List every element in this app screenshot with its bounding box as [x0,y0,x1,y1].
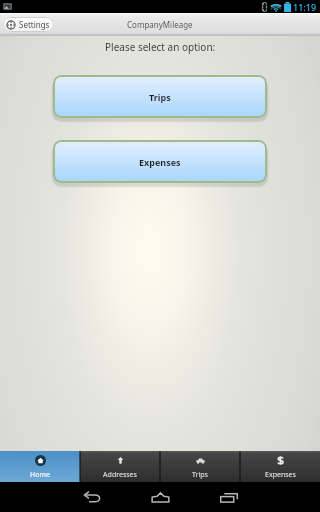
button[interactable]: Addresses [80,451,160,482]
button[interactable]: Home [0,451,80,482]
button[interactable]: Settings [3,17,54,32]
staticText: Settings [19,19,50,30]
staticText: Addresses [103,470,137,480]
button[interactable]: Expenses [240,451,320,482]
button[interactable]: Home [140,487,180,507]
staticText: 11:19 [293,1,317,13]
staticText: Home [30,470,50,480]
staticText: Expenses [139,156,181,168]
staticText: Please select an option: [105,40,216,54]
staticText: CompanyMileage [127,19,193,30]
staticText: Trips [192,470,208,480]
button[interactable]: Expenses [53,140,267,183]
staticText: Trips [149,91,171,103]
staticText: Expenses [265,470,296,480]
button[interactable]: Trips [53,75,267,118]
button[interactable]: Back [72,487,112,507]
button[interactable]: Recent apps [209,487,249,507]
button[interactable]: Trips [160,451,240,482]
